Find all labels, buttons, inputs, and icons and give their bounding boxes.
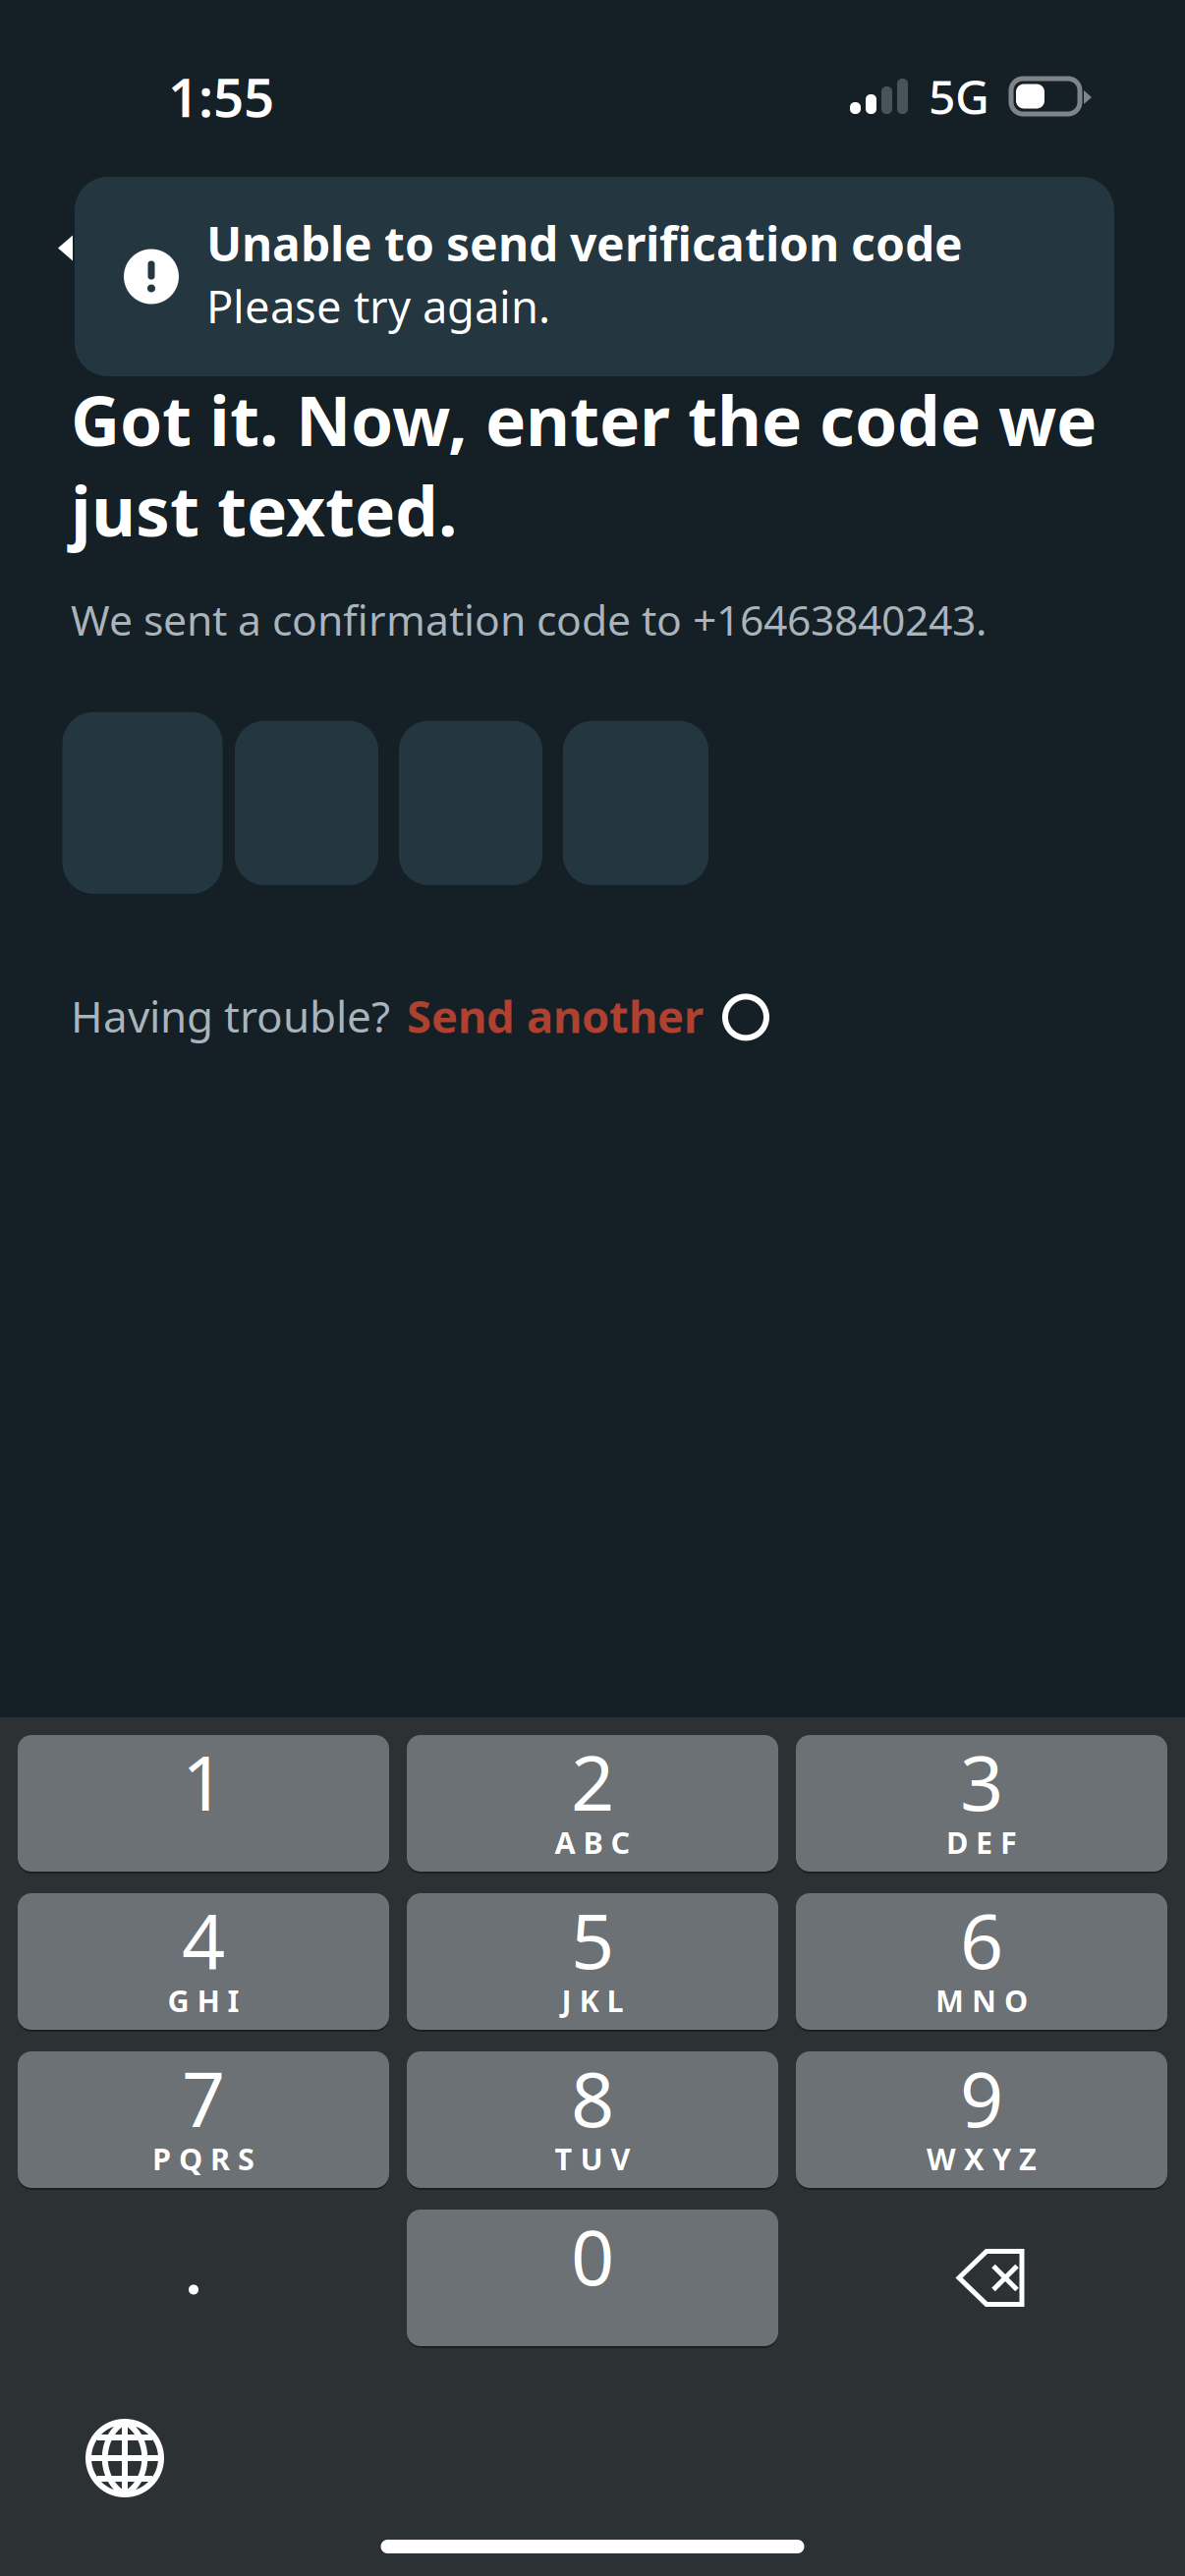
staticText: 4 <box>182 1889 225 1990</box>
button[interactable]: 2 <box>407 1735 778 1872</box>
button[interactable]: Period <box>18 2210 389 2346</box>
button[interactable]: 5 <box>407 1893 778 2030</box>
staticText: J K L <box>562 1980 623 2020</box>
button[interactable]: Next keyboard <box>18 2368 175 2486</box>
staticText: M N O <box>935 1980 1028 2020</box>
staticText: Unable to send verification code <box>206 212 963 274</box>
staticText: Please try again. <box>206 276 550 336</box>
button[interactable]: 6 <box>796 1893 1167 2030</box>
staticText: G H I <box>168 1980 239 2020</box>
staticText: 0 <box>571 2205 614 2306</box>
button[interactable]: Send another <box>390 986 766 1045</box>
staticText: 8 <box>571 2047 614 2148</box>
button[interactable]: 1 <box>18 1735 389 1872</box>
staticText: 1:55 <box>168 61 274 132</box>
button[interactable]: 4 <box>18 1893 389 2030</box>
staticText: D E F <box>946 1822 1017 1862</box>
button[interactable]: Unable to send verification code. Please… <box>0 177 1185 376</box>
staticText: Having trouble? <box>71 987 390 1044</box>
staticText: 2 <box>571 1731 614 1832</box>
button[interactable]: Delete <box>796 2210 1167 2346</box>
staticText: W X Y Z <box>927 2138 1037 2178</box>
button[interactable]: Back <box>0 177 73 376</box>
staticText: 1 <box>182 1731 225 1832</box>
staticText: 3 <box>960 1731 1003 1832</box>
button[interactable]: 0 <box>407 2210 778 2346</box>
staticText: 9 <box>960 2047 1003 2148</box>
staticText: P Q R S <box>152 2138 254 2178</box>
staticText: 6 <box>960 1889 1003 1990</box>
button[interactable]: 3 <box>796 1735 1167 1872</box>
staticText: Got it. Now, enter the code we just text… <box>71 374 1097 555</box>
staticText: We sent a confirmation code to +16463840… <box>71 592 987 647</box>
staticText: A B C <box>555 1822 630 1862</box>
staticText: T U V <box>555 2138 630 2178</box>
button[interactable]: Verification code <box>0 712 1185 894</box>
staticText: 5 <box>571 1889 614 1990</box>
button[interactable]: 9 <box>796 2051 1167 2188</box>
button[interactable]: 8 <box>407 2051 778 2188</box>
button[interactable]: 7 <box>18 2051 389 2188</box>
staticText: Send another <box>407 986 704 1045</box>
staticText: 7 <box>182 2047 225 2148</box>
staticText: 5G <box>929 65 989 128</box>
